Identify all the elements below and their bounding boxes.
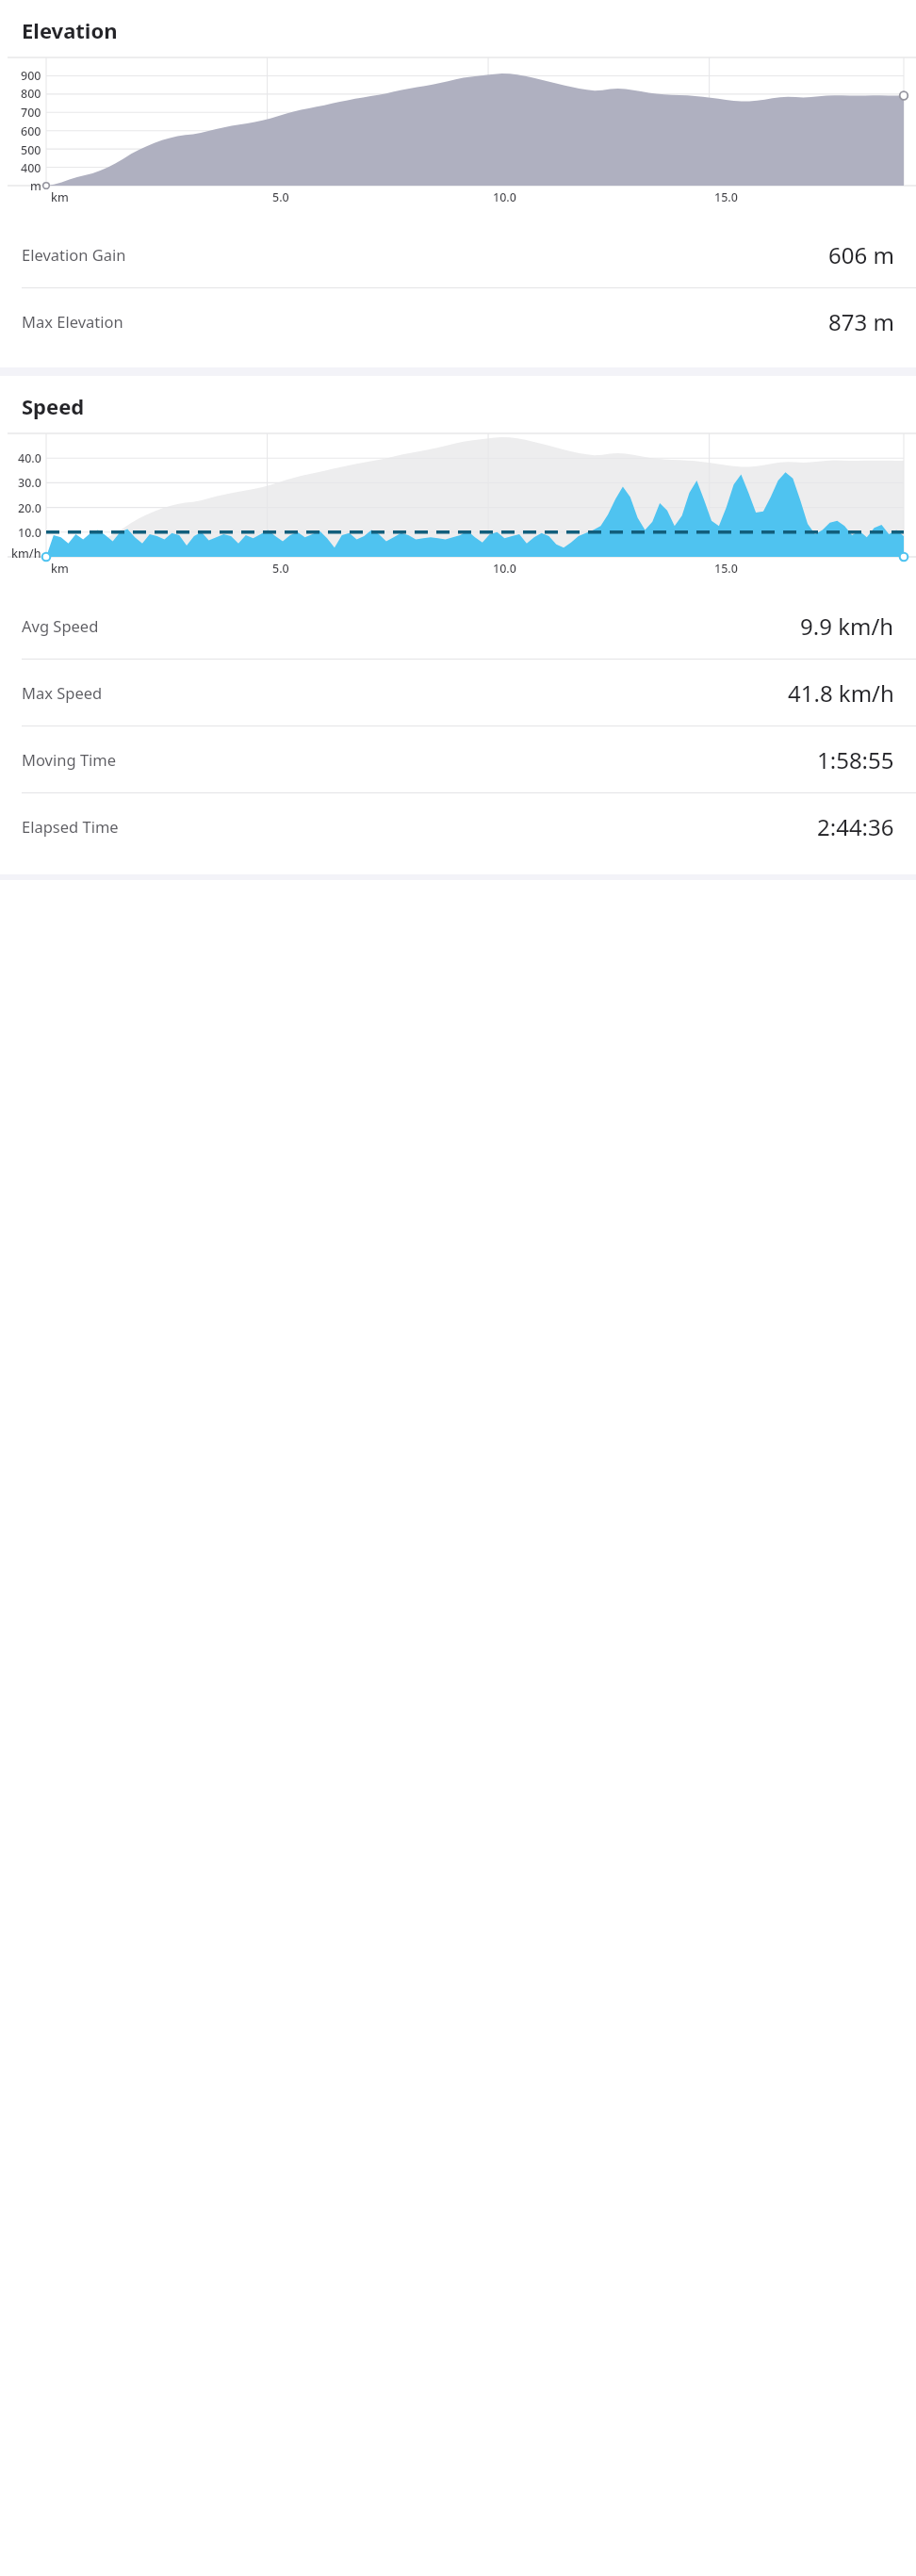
- staticText: 2:44:36: [817, 811, 894, 842]
- staticText: 5.0: [272, 189, 289, 205]
- staticText: 10.0: [18, 525, 41, 541]
- staticText: 10.0: [493, 561, 516, 577]
- staticText: 30.0: [18, 475, 41, 491]
- staticText: 900: [21, 68, 41, 84]
- staticText: 10.0: [493, 189, 516, 205]
- button[interactable]: Elevation Gain: [0, 221, 916, 287]
- staticText: Max Speed: [22, 682, 103, 703]
- staticText: 1:58:55: [817, 744, 894, 775]
- button[interactable]: Max Elevation: [0, 287, 916, 354]
- staticText: Elevation Gain: [22, 244, 126, 265]
- staticText: Elapsed Time: [22, 816, 119, 837]
- button[interactable]: Elapsed Time: [0, 792, 916, 859]
- button[interactable]: Avg Speed: [0, 593, 916, 659]
- staticText: 500: [21, 142, 41, 158]
- staticText: Elevation: [22, 16, 118, 44]
- staticText: Max Elevation: [22, 311, 123, 332]
- staticText: 600: [21, 123, 41, 139]
- staticText: 40.0: [18, 450, 41, 466]
- staticText: 700: [21, 105, 41, 121]
- staticText: m: [30, 178, 41, 194]
- staticText: 41.8 km/h: [788, 677, 894, 709]
- button[interactable]: Max Speed: [0, 659, 916, 726]
- staticText: 873 m: [828, 306, 894, 337]
- staticText: km: [51, 561, 69, 577]
- staticText: km/h: [11, 546, 41, 562]
- staticText: 606 m: [828, 239, 894, 270]
- staticText: 9.9 km/h: [800, 611, 894, 642]
- staticText: 400: [21, 160, 41, 176]
- staticText: 800: [21, 86, 41, 102]
- staticText: 15.0: [714, 189, 738, 205]
- staticText: 5.0: [272, 561, 289, 577]
- staticText: 20.0: [18, 500, 41, 516]
- staticText: 15.0: [714, 561, 738, 577]
- staticText: Speed: [22, 392, 85, 420]
- staticText: km: [51, 189, 69, 205]
- staticText: Avg Speed: [22, 615, 99, 636]
- staticText: Moving Time: [22, 749, 117, 770]
- button[interactable]: Moving Time: [0, 726, 916, 792]
